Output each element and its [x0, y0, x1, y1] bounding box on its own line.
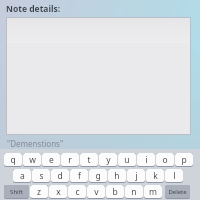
- button[interactable]: e: [42, 153, 60, 166]
- button[interactable]: c: [68, 185, 86, 198]
- button[interactable]: b: [106, 185, 124, 198]
- button[interactable]: d: [51, 169, 69, 182]
- staticText: a: [20, 170, 25, 182]
- staticText: b: [112, 186, 118, 198]
- button[interactable]: t: [80, 153, 98, 166]
- button[interactable]: k: [146, 169, 164, 182]
- staticText: e: [49, 154, 54, 166]
- button[interactable]: g: [89, 169, 107, 182]
- staticText: j: [135, 170, 138, 182]
- staticText: Note details:: [6, 3, 61, 15]
- staticText: f: [78, 170, 81, 182]
- button[interactable]: p: [175, 153, 193, 166]
- button[interactable]: m: [144, 185, 162, 198]
- staticText: d: [57, 170, 63, 182]
- staticText: l: [173, 170, 176, 182]
- button[interactable]: y: [99, 153, 117, 166]
- staticText: k: [153, 170, 158, 182]
- staticText: o: [162, 154, 168, 166]
- staticText: "Demenstions": [7, 138, 64, 149]
- button[interactable]: j: [127, 169, 145, 182]
- button[interactable]: Shift: [4, 185, 29, 198]
- staticText: m: [149, 186, 157, 198]
- staticText: z: [37, 186, 41, 198]
- staticText: i: [145, 154, 148, 166]
- staticText: Shift: [10, 188, 23, 196]
- button[interactable]: a: [13, 169, 31, 182]
- staticText: t: [87, 154, 91, 166]
- button[interactable]: u: [118, 153, 136, 166]
- staticText: n: [131, 186, 137, 198]
- staticText: s: [39, 170, 44, 182]
- button[interactable]: r: [61, 153, 79, 166]
- button[interactable]: q: [4, 153, 22, 166]
- staticText: w: [29, 154, 36, 166]
- button[interactable]: Delete: [165, 185, 190, 198]
- button[interactable]: l: [165, 169, 183, 182]
- staticText: p: [181, 154, 187, 166]
- button[interactable]: f: [70, 169, 88, 182]
- button[interactable]: [6, 17, 191, 135]
- staticText: c: [75, 186, 80, 198]
- button[interactable]: v: [87, 185, 105, 198]
- staticText: r: [68, 154, 72, 166]
- button[interactable]: i: [137, 153, 155, 166]
- button[interactable]: h: [108, 169, 126, 182]
- staticText: x: [56, 186, 61, 198]
- staticText: v: [94, 186, 99, 198]
- staticText: q: [10, 154, 16, 166]
- staticText: g: [95, 170, 101, 182]
- staticText: y: [106, 154, 111, 166]
- button[interactable]: w: [23, 153, 41, 166]
- staticText: h: [114, 170, 120, 182]
- staticText: u: [124, 154, 130, 166]
- button[interactable]: s: [32, 169, 50, 182]
- button[interactable]: n: [125, 185, 143, 198]
- staticText: Delete: [168, 188, 187, 196]
- button[interactable]: x: [49, 185, 67, 198]
- button[interactable]: o: [156, 153, 174, 166]
- button[interactable]: z: [30, 185, 48, 198]
